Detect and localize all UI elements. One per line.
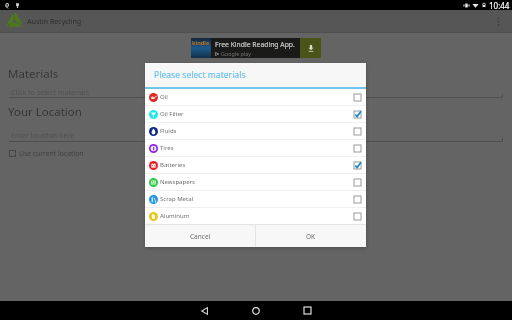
button[interactable]: Tires [145, 140, 366, 156]
staticText: kindle [192, 39, 210, 47]
staticText: Batteries [160, 161, 186, 169]
button[interactable]: Oil [145, 89, 366, 105]
button[interactable]: OK [256, 225, 366, 247]
button[interactable]: Recents [287, 301, 327, 320]
staticText: Click to select materials [11, 87, 90, 97]
staticText: Cancel [190, 232, 211, 241]
staticText: Use current location [19, 149, 84, 158]
staticText: Austin Recycling [27, 16, 82, 26]
button[interactable]: kindle [191, 38, 321, 58]
staticText: Your Location [8, 104, 82, 120]
button[interactable]: Batteries [145, 157, 366, 173]
button[interactable]: Aluminum [145, 208, 366, 224]
staticText: OK [306, 232, 316, 241]
staticText: 10:44 [489, 0, 510, 10]
staticText: Free Kindle Reading App. [215, 40, 295, 49]
staticText: Google play [221, 50, 252, 57]
button[interactable]: Use current location [9, 147, 84, 160]
staticText: Aluminum [160, 212, 190, 220]
button[interactable]: Install [300, 38, 321, 58]
button[interactable]: Newspapers [145, 174, 366, 190]
button[interactable]: Enter location here [0, 130, 512, 143]
button[interactable]: Cancel [145, 225, 255, 247]
button[interactable]: Click to select materials [0, 86, 512, 99]
staticText: Scrap Metal [160, 195, 194, 203]
button[interactable]: Back [185, 301, 225, 320]
staticText: Enter location here [11, 130, 75, 140]
staticText: Oil Filter [160, 110, 184, 118]
staticText: Oil [160, 93, 168, 101]
button[interactable]: Home [236, 301, 276, 320]
staticText: Materials [8, 66, 59, 82]
button[interactable]: Austin Recycling [0, 10, 512, 32]
staticText: Please select materials [154, 69, 246, 81]
staticText: Newspapers [160, 178, 195, 186]
button[interactable]: Scrap Metal [145, 191, 366, 207]
staticText: Fluids [160, 127, 177, 135]
staticText: Tires [160, 144, 174, 152]
button[interactable]: Fluids [145, 123, 366, 139]
button[interactable]: Oil Filter [145, 106, 366, 122]
